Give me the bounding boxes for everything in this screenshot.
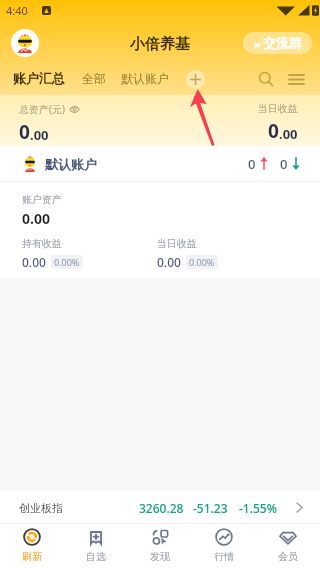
staticText: 行情 [214, 550, 234, 563]
staticText: 交流群 [263, 35, 302, 51]
staticText: 当日收益 [258, 102, 298, 115]
staticText: 0.00 [22, 254, 46, 270]
staticText: 0 [268, 118, 279, 144]
staticText: .00 [30, 126, 49, 144]
staticText: 0 [19, 119, 30, 145]
button[interactable]: 发现 [128, 523, 192, 568]
staticText: 账户资产 [22, 193, 62, 206]
button[interactable]: Search [255, 68, 277, 90]
staticText: 3260.28 [139, 500, 184, 516]
staticText: 0.00% [189, 256, 215, 268]
staticText: 发现 [150, 550, 170, 563]
button[interactable]: Add account [186, 70, 205, 89]
button[interactable]: 刷新 [0, 523, 64, 568]
button[interactable]: 会员 [256, 523, 320, 568]
staticText: 账户汇总 [13, 70, 65, 86]
button[interactable]: 默认账户 [23, 146, 300, 181]
staticText: 0.00% [54, 256, 80, 268]
staticText: 默认账户 [45, 156, 97, 172]
staticText: 默认账户 [121, 71, 169, 86]
staticText: 刷新 [22, 550, 42, 563]
staticText: 创业板指 [19, 501, 63, 515]
button[interactable]: 自选 [64, 523, 128, 568]
staticText: 0 [280, 155, 288, 173]
staticText: 总资产(元) [19, 102, 65, 116]
staticText: 4:40 [6, 3, 28, 18]
staticText: 0.00 [22, 209, 50, 228]
staticText: 0.00 [157, 254, 181, 270]
staticText: 当日收益 [157, 237, 197, 250]
staticText: -1.55% [239, 500, 277, 516]
staticText: 会员 [278, 550, 298, 563]
staticText: -51.23 [193, 500, 228, 516]
button[interactable]: 创业板指 [0, 491, 320, 523]
button[interactable]: Menu [285, 68, 307, 90]
button[interactable]: Profile [11, 29, 39, 57]
staticText: 持有收益 [22, 237, 62, 250]
button[interactable]: 行情 [192, 523, 256, 568]
staticText: 小倍养基 [130, 35, 190, 54]
staticText: » [254, 36, 261, 51]
staticText: 全部 [82, 71, 106, 86]
staticText: 自选 [86, 550, 106, 563]
button[interactable]: » [243, 32, 312, 54]
staticText: .00 [279, 125, 298, 143]
staticText: 0 [248, 155, 256, 173]
